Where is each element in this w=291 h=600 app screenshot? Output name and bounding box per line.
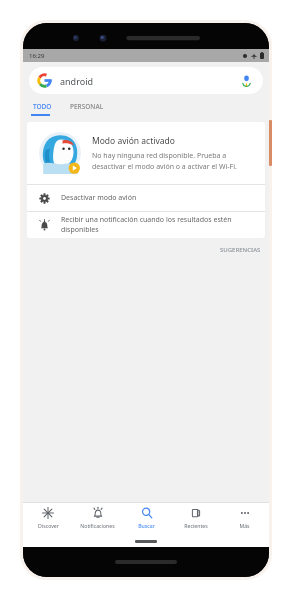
button[interactable]: Notificaciones bbox=[73, 503, 122, 536]
staticText: Buscar bbox=[138, 522, 155, 529]
staticText: PERSONAL bbox=[70, 102, 104, 111]
button[interactable]: Modo avión activado bbox=[27, 122, 265, 184]
button[interactable]: Más bbox=[220, 503, 269, 536]
staticText: 16:29 bbox=[29, 52, 45, 60]
button[interactable]: Buscar bbox=[122, 503, 171, 536]
button[interactable]: TODO bbox=[29, 100, 56, 113]
button[interactable]: Recientes bbox=[171, 503, 220, 536]
staticText: Más bbox=[239, 522, 250, 529]
staticText: Desactivar modo avión bbox=[61, 193, 137, 203]
button[interactable]: Discover bbox=[23, 503, 73, 536]
staticText: Recibir una notificación cuando los resu… bbox=[61, 215, 253, 235]
staticText: TODO bbox=[33, 102, 52, 111]
staticText: Recientes bbox=[184, 522, 208, 529]
button[interactable]: Desactivar modo avión bbox=[27, 185, 265, 211]
button[interactable]: android bbox=[29, 67, 263, 94]
staticText: No hay ninguna red disponible. Prueba a … bbox=[92, 151, 253, 171]
staticText: Notificaciones bbox=[80, 522, 115, 529]
staticText: android bbox=[60, 75, 93, 87]
staticText: Modo avión activado bbox=[92, 135, 175, 147]
button[interactable]: PERSONAL bbox=[66, 100, 108, 113]
button[interactable]: Voice search bbox=[239, 73, 254, 88]
button[interactable]: Recibir una notificación cuando los resu… bbox=[27, 212, 265, 238]
staticText: Discover bbox=[38, 522, 59, 529]
staticText: SUGERENCIAS bbox=[220, 246, 261, 254]
